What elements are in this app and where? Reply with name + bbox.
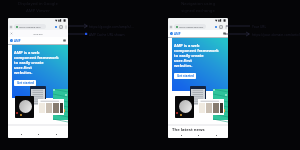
staticText: The latest news bbox=[172, 127, 205, 133]
button[interactable]: Tabs bbox=[59, 25, 63, 29]
staticText: https://www.amp.dev bbox=[179, 25, 204, 28]
button[interactable]: Close bbox=[10, 32, 13, 35]
button[interactable]: Back bbox=[169, 25, 173, 29]
button[interactable]: Home bbox=[193, 133, 203, 138]
staticText: Displayed in Google AMP Viewer bbox=[8, 1, 68, 13]
staticText: https://your-domain.com/article bbox=[252, 32, 300, 36]
staticText: AMP bbox=[174, 32, 181, 36]
button[interactable]: More options bbox=[65, 25, 67, 29]
staticText: Get started bbox=[177, 74, 194, 78]
button[interactable]: Get started bbox=[174, 73, 196, 79]
button[interactable]: More options bbox=[225, 25, 227, 29]
button[interactable]: Tabs bbox=[219, 25, 223, 29]
button[interactable]: Menu bbox=[63, 39, 66, 42]
button[interactable]: Back bbox=[16, 131, 26, 138]
staticText: AMP is a web component framework to easi… bbox=[174, 43, 219, 68]
button[interactable]: Recents bbox=[51, 131, 61, 138]
staticText: https://google.com/amp/s/... bbox=[89, 24, 134, 28]
staticText: AMP Cache URL shown bbox=[89, 32, 125, 36]
staticText: Your URL bbox=[252, 24, 267, 28]
button[interactable]: Get started bbox=[14, 80, 36, 86]
staticText: AMP bbox=[14, 39, 21, 43]
staticText: AMP is a web component framework to easi… bbox=[14, 50, 59, 75]
button[interactable]: Address bar bbox=[14, 24, 46, 29]
staticText: Navigation using signed exchange bbox=[168, 1, 228, 13]
staticText: amp.dev bbox=[8, 32, 68, 35]
button[interactable]: Recents bbox=[211, 133, 221, 138]
staticText: Get started bbox=[17, 81, 34, 85]
button[interactable]: Address bar bbox=[174, 24, 206, 29]
button[interactable]: Home bbox=[33, 131, 43, 138]
button[interactable]: Menu bbox=[223, 32, 226, 35]
button[interactable]: Back bbox=[9, 25, 13, 29]
staticText: https://google.com bbox=[19, 25, 41, 28]
button[interactable]: Back bbox=[176, 133, 186, 138]
